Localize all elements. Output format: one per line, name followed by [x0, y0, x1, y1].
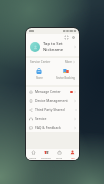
button[interactable]: Store	[26, 66, 52, 81]
staticText: Discover	[41, 156, 52, 159]
button[interactable]: Me	[66, 149, 79, 160]
staticText: More	[65, 60, 72, 64]
button[interactable]: Home	[26, 149, 40, 160]
staticText: Store	[36, 76, 43, 80]
button[interactable]: Tap to Set Nickname	[26, 40, 79, 56]
staticText: Home	[29, 156, 37, 159]
button[interactable]: Device Management	[26, 96, 79, 105]
button[interactable]: FAQ & Feedback	[26, 123, 79, 132]
button[interactable]: Scan	[64, 35, 69, 40]
staticText: Third Party Shared Services	[35, 107, 76, 112]
button[interactable]: Message Center	[26, 87, 79, 96]
staticText: Sevice Booking	[56, 76, 75, 80]
staticText: Tap to Set Nickname	[43, 41, 74, 53]
staticText: Store	[56, 156, 63, 159]
button[interactable]: Settings	[71, 35, 76, 40]
button[interactable]: More	[65, 60, 75, 64]
staticText: Me	[71, 156, 75, 159]
staticText: Device Management	[35, 98, 68, 103]
button[interactable]: Store	[53, 149, 66, 160]
button[interactable]: Discover	[40, 149, 53, 160]
staticText: Message Center	[35, 89, 61, 94]
staticText: Service Center	[30, 60, 51, 64]
staticText: Service	[35, 116, 47, 121]
button[interactable]: Third Party Shared Services	[26, 105, 79, 114]
staticText: FAQ & Feedback	[35, 125, 61, 130]
button[interactable]: Service	[26, 114, 79, 123]
button[interactable]: Sevice Booking	[52, 66, 79, 81]
